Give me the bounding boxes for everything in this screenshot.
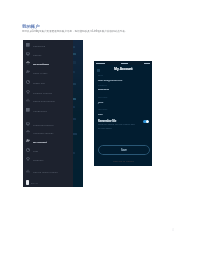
button[interactable]: Wi-Fi Settings <box>23 60 73 66</box>
staticText: Guest Access <box>33 71 48 74</box>
button[interactable]: Save <box>98 145 150 155</box>
staticText: Remember Me <box>98 119 117 122</box>
staticText: Save <box>121 148 127 152</box>
staticText: Sites <box>33 149 39 152</box>
staticText: John <box>98 100 104 103</box>
button[interactable]: Remember me toggle <box>143 120 149 123</box>
staticText: Devices <box>33 53 42 56</box>
staticText: 4 <box>172 228 174 232</box>
button[interactable]: Dashboard <box>23 42 73 48</box>
staticText: Advanced Settings <box>33 131 54 134</box>
button[interactable]: Get the Linksys Toolkit <box>23 168 73 174</box>
button[interactable]: Device Prioritization <box>23 97 73 103</box>
button[interactable]: Supported Devices <box>23 121 73 127</box>
button[interactable]: Speed Test <box>23 79 73 85</box>
staticText: Dashboard <box>33 44 46 47</box>
button[interactable]: My Account <box>23 138 73 144</box>
staticText: v3.1.2 <box>31 181 38 184</box>
button[interactable]: Feedback <box>23 156 73 162</box>
staticText: Wi-Fi Settings <box>33 62 49 65</box>
staticText: Speed Test <box>33 81 45 84</box>
button[interactable]: Menu <box>96 68 101 73</box>
button[interactable]: Remember Me <box>94 119 152 132</box>
button[interactable]: Parental Controls <box>23 89 73 95</box>
staticText: First name <box>98 96 108 99</box>
staticText: Device Prioritization <box>33 99 56 102</box>
button[interactable]: Sign out of Linksys <box>94 157 152 164</box>
staticText: Last name <box>98 108 108 111</box>
staticText: john.doe@email.com <box>98 78 123 81</box>
staticText: Sign out of Linksys <box>113 159 134 162</box>
button[interactable]: Devices <box>23 51 73 57</box>
staticText: Doe <box>98 112 103 115</box>
staticText: Parental Controls <box>33 91 53 94</box>
staticText: Get the Linksys Toolkit <box>33 170 58 173</box>
button[interactable]: Advanced Settings <box>23 129 73 135</box>
staticText: Supported Devices <box>33 123 54 126</box>
staticText: 您可以从Linksys 账户页面更改您的账户信息，包括密码以及与Linksys … <box>22 29 128 32</box>
staticText: Keep me signed into the Linksys app on t… <box>98 123 135 129</box>
staticText: Feedback <box>33 158 44 161</box>
staticText: Notifications <box>33 109 47 112</box>
button[interactable]: v3.1.2 <box>23 178 73 186</box>
button[interactable]: Sites <box>23 147 73 153</box>
staticText: My Account <box>33 140 47 143</box>
staticText: •••••••••• <box>98 88 109 92</box>
staticText: My Account <box>114 67 133 71</box>
staticText: 我的账户 <box>22 24 40 30</box>
staticText: Email <box>98 74 103 77</box>
button[interactable]: Guest Access <box>23 69 73 75</box>
staticText: Password <box>98 84 107 87</box>
button[interactable]: Notifications <box>23 107 73 113</box>
